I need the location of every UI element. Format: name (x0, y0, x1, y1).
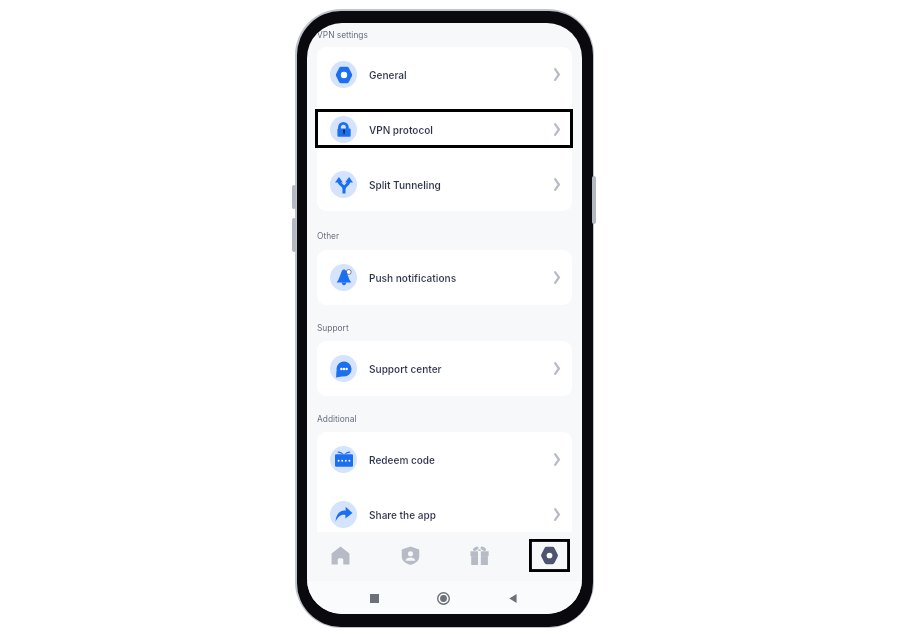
staticText: Support (317, 323, 349, 333)
button[interactable]: Push notifications (317, 250, 572, 305)
staticText: Other (317, 231, 340, 241)
staticText: Split Tunneling (369, 179, 441, 191)
staticText: Share the app (369, 509, 436, 521)
button[interactable]: VPN protocol (317, 102, 572, 157)
staticText: Additional (317, 414, 357, 424)
staticText: Push notifications (369, 272, 457, 284)
button[interactable]: Redeem code (317, 432, 572, 487)
button[interactable]: General (317, 47, 572, 102)
button[interactable]: Protection (390, 539, 431, 572)
staticText: VPN settings (317, 30, 368, 40)
staticText: General (369, 69, 407, 81)
staticText: VPN protocol (369, 124, 433, 136)
button[interactable]: Split Tunneling (317, 157, 572, 212)
staticText: Support center (369, 363, 442, 375)
button[interactable]: Share the app (317, 487, 572, 532)
button[interactable]: Support center (317, 341, 572, 396)
button[interactable]: Settings (529, 539, 570, 572)
staticText: Redeem code (369, 454, 435, 466)
button[interactable]: Offers (459, 539, 500, 572)
button[interactable]: Home (320, 539, 361, 572)
